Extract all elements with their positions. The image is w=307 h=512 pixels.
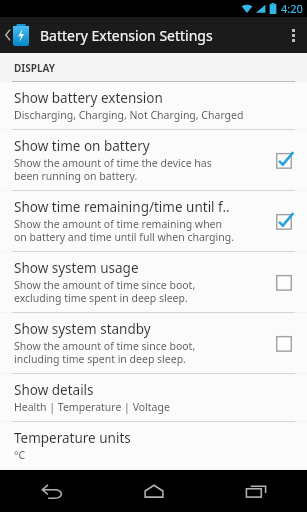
button[interactable]: Unchecked	[271, 269, 297, 295]
button[interactable]: Show system standby	[0, 313, 307, 373]
staticText: °C	[14, 448, 26, 462]
staticText: Show details	[14, 381, 94, 399]
staticText: Show system usage	[14, 259, 139, 277]
staticText: DISPLAY	[14, 61, 56, 75]
staticText: Show time remaining/time until f..	[14, 198, 230, 216]
staticText: Discharging, Charging, Not Charging, Cha…	[14, 108, 244, 122]
button[interactable]: Back	[0, 17, 34, 53]
button[interactable]: Show details	[0, 374, 307, 421]
staticText: Health | Temperature | Voltage	[14, 400, 170, 414]
button[interactable]: Checked	[271, 208, 297, 234]
button[interactable]: Show time on battery	[0, 130, 307, 190]
staticText: Show the amount of time since boot, excl…	[14, 278, 196, 305]
staticText: Show the amount of time since boot, incl…	[14, 339, 196, 366]
staticText: Battery Extension Settings	[40, 26, 213, 45]
staticText: Show the amount of time the device has b…	[14, 156, 212, 183]
button[interactable]: Temperature units	[0, 422, 307, 469]
button[interactable]: Unchecked	[271, 330, 297, 356]
staticText: Show time on battery	[14, 137, 150, 155]
staticText: Show the amount of time remaining when o…	[14, 217, 235, 244]
staticText: Temperature units	[14, 429, 131, 447]
button[interactable]: Show system usage	[0, 252, 307, 312]
staticText: 4:20	[281, 1, 303, 16]
button[interactable]: Show time remaining/time until f..	[0, 191, 307, 251]
button[interactable]: Checked	[271, 147, 297, 173]
button[interactable]: Recent apps	[205, 470, 307, 512]
button[interactable]: More options	[279, 17, 307, 53]
staticText: Show system standby	[14, 320, 151, 338]
button[interactable]: Home	[103, 470, 205, 512]
staticText: Show battery extension	[14, 89, 163, 107]
button[interactable]: Show battery extension	[0, 82, 307, 129]
button[interactable]: Back	[0, 470, 103, 512]
